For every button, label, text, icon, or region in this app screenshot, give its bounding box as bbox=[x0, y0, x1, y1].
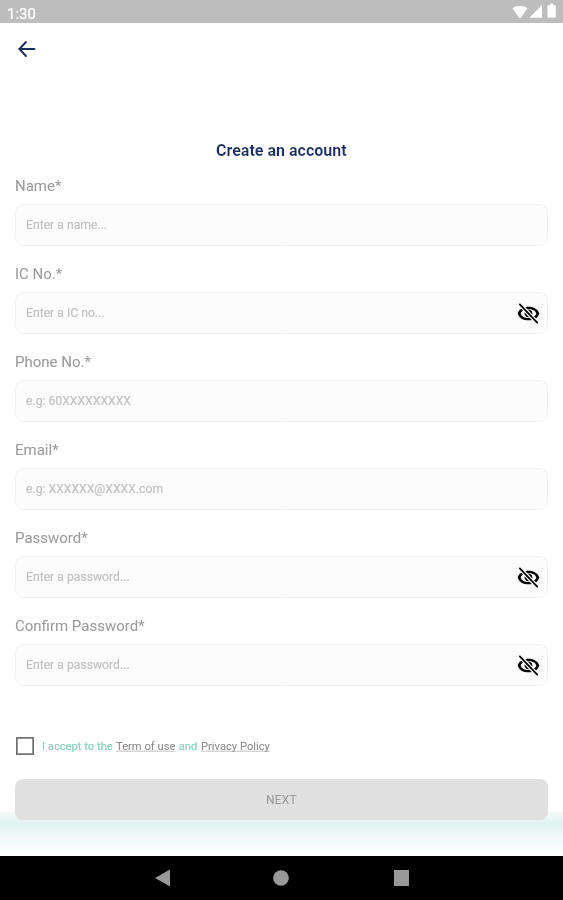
staticText: Enter a password... bbox=[26, 658, 130, 672]
button[interactable]: Enter a IC no... bbox=[15, 292, 548, 334]
button[interactable]: Back bbox=[140, 856, 184, 900]
staticText: Password* bbox=[15, 529, 88, 547]
button[interactable]: Enter a name... bbox=[15, 204, 548, 246]
button[interactable]: Term of use bbox=[116, 740, 176, 753]
staticText: e.g: 60XXXXXXXXX bbox=[26, 394, 131, 408]
button[interactable]: Enter a password... bbox=[15, 556, 548, 598]
staticText: NEXT bbox=[266, 793, 297, 807]
staticText: I accept to the bbox=[42, 740, 116, 753]
button[interactable]: Recent apps bbox=[379, 856, 423, 900]
staticText: Phone No.* bbox=[15, 353, 91, 371]
button[interactable]: NEXT bbox=[15, 779, 548, 820]
button[interactable]: Toggle password visibility bbox=[515, 564, 541, 590]
staticText: Name* bbox=[15, 177, 62, 195]
staticText: Create an account bbox=[216, 141, 347, 160]
staticText: Confirm Password* bbox=[15, 617, 145, 635]
staticText: Enter a password... bbox=[26, 570, 130, 584]
staticText: Enter a IC no... bbox=[26, 306, 105, 320]
staticText: 1:30 bbox=[7, 5, 36, 23]
button[interactable]: Enter a password... bbox=[15, 644, 548, 686]
button[interactable]: Accept terms checkbox bbox=[14, 735, 36, 757]
button[interactable]: Home bbox=[259, 856, 303, 900]
staticText: Email* bbox=[15, 441, 59, 459]
button[interactable]: Privacy Policy bbox=[201, 740, 270, 753]
button[interactable]: e.g: XXXXXX@XXXX.com bbox=[15, 468, 548, 510]
staticText: and bbox=[176, 740, 201, 753]
staticText: IC No.* bbox=[15, 265, 63, 283]
staticText: Enter a name... bbox=[26, 218, 108, 232]
button[interactable]: Toggle password visibility bbox=[515, 300, 541, 326]
staticText: e.g: XXXXXX@XXXX.com bbox=[26, 482, 164, 496]
button[interactable]: e.g: 60XXXXXXXXX bbox=[15, 380, 548, 422]
button[interactable]: Toggle password visibility bbox=[515, 652, 541, 678]
button[interactable]: Back bbox=[7, 29, 47, 69]
